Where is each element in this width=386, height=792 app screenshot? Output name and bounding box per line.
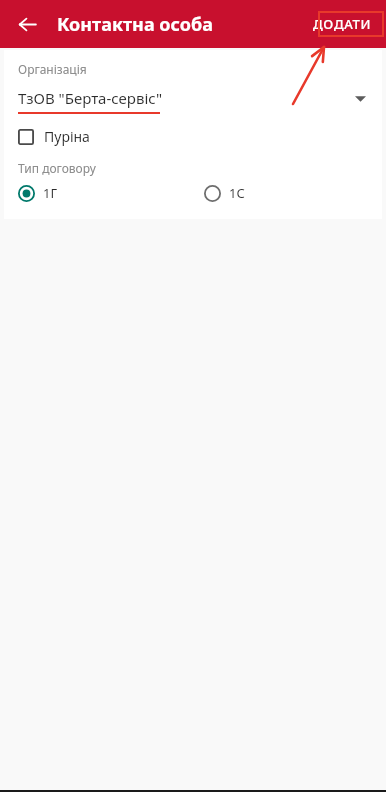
staticText: Пуріна [44, 127, 90, 146]
staticText: 1С [229, 184, 245, 202]
button[interactable]: 1С [204, 181, 368, 205]
staticText: 1Г [43, 184, 58, 202]
staticText: Організація [18, 61, 87, 77]
button[interactable]: ДОДАТИ [302, 8, 383, 40]
button[interactable]: Пуріна [18, 125, 90, 148]
staticText: Контактна особа [57, 12, 213, 37]
staticText: Тип договору [18, 160, 96, 176]
staticText: ДОДАТИ [313, 15, 372, 33]
button[interactable]: ТзОВ "Берта-сервіс" [18, 88, 368, 114]
button[interactable]: Back [7, 4, 47, 44]
button[interactable]: 1Г [18, 181, 204, 205]
staticText: ТзОВ "Берта-сервіс" [18, 88, 163, 108]
